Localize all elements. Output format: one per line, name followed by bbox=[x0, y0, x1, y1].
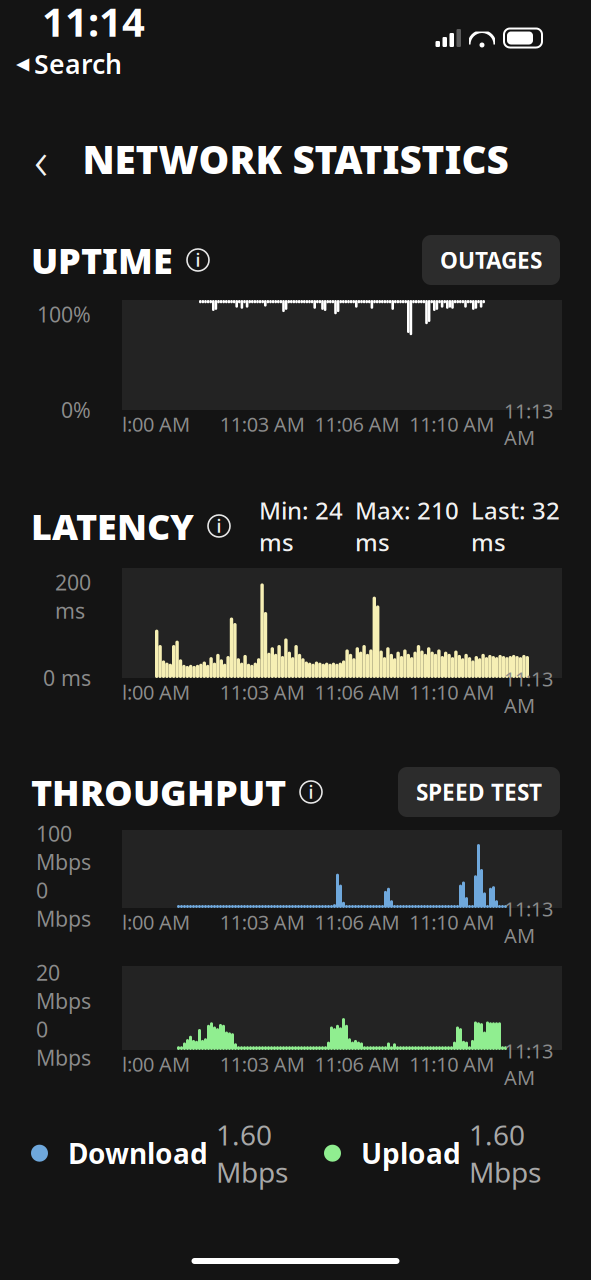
staticText: 11:03 AM bbox=[220, 909, 305, 935]
staticText: 11:10 AM bbox=[409, 679, 494, 705]
button[interactable]: Back bbox=[14, 132, 68, 186]
staticText: l:00 AM bbox=[122, 679, 190, 705]
staticText: NETWORK STATISTICS bbox=[82, 133, 508, 185]
staticText: SPEED TEST bbox=[416, 777, 542, 807]
staticText: 11:14 bbox=[42, 0, 145, 48]
button[interactable]: SPEED TEST bbox=[398, 767, 560, 817]
staticText: l:00 AM bbox=[122, 411, 190, 437]
staticText: 11:06 AM bbox=[314, 909, 399, 935]
button[interactable]: ◀ bbox=[0, 46, 122, 81]
staticText: l:00 AM bbox=[122, 1051, 190, 1077]
staticText: 0 Mbps bbox=[36, 876, 91, 933]
staticText: Min: 24 ms bbox=[259, 494, 343, 558]
staticText: 200 ms bbox=[55, 568, 91, 625]
button[interactable]: About UPTIME bbox=[187, 249, 209, 271]
staticText: 11:10 AM bbox=[409, 909, 494, 935]
staticText: Max: 210 ms bbox=[355, 494, 459, 558]
staticText: 11:13 AM bbox=[504, 895, 553, 948]
staticText: 1.60 Mbps bbox=[216, 1116, 288, 1190]
staticText: 0% bbox=[61, 396, 91, 424]
staticText: 11:13 AM bbox=[504, 665, 553, 718]
staticText: Download bbox=[68, 1135, 208, 1172]
staticText: 1.60 Mbps bbox=[469, 1116, 541, 1190]
staticText: Upload bbox=[361, 1135, 461, 1172]
staticText: 11:06 AM bbox=[314, 411, 399, 437]
staticText: THROUGHPUT bbox=[31, 768, 286, 816]
staticText: ‹ bbox=[34, 124, 48, 194]
staticText: 11:06 AM bbox=[314, 1051, 399, 1077]
button[interactable]: About Latency bbox=[208, 515, 230, 537]
staticText: 11:10 AM bbox=[409, 1051, 494, 1077]
staticText: 11:03 AM bbox=[220, 411, 305, 437]
staticText: 20 Mbps bbox=[36, 958, 91, 1015]
staticText: Search bbox=[34, 46, 122, 81]
staticText: l:00 AM bbox=[122, 909, 190, 935]
staticText: OUTAGES bbox=[440, 245, 542, 275]
button[interactable]: OUTAGES bbox=[422, 235, 560, 285]
staticText: 0 ms bbox=[43, 664, 91, 692]
staticText: ◀ bbox=[16, 54, 29, 73]
staticText: 11:06 AM bbox=[314, 679, 399, 705]
staticText: 11:03 AM bbox=[220, 1051, 305, 1077]
staticText: 0 Mbps bbox=[36, 1015, 91, 1072]
staticText: UPTIME bbox=[31, 236, 173, 284]
staticText: LATENCY bbox=[31, 502, 194, 550]
staticText: i bbox=[308, 780, 313, 803]
staticText: 100% bbox=[37, 300, 91, 328]
staticText: i bbox=[195, 248, 200, 271]
staticText: 100 Mbps bbox=[36, 819, 91, 876]
button[interactable]: About THROUGHPUT bbox=[300, 781, 322, 803]
staticText: 11:13 AM bbox=[504, 1037, 553, 1090]
staticText: Last: 32 ms bbox=[471, 494, 560, 558]
staticText: 11:10 AM bbox=[409, 411, 494, 437]
staticText: 11:13 AM bbox=[504, 397, 553, 450]
staticText: i bbox=[216, 514, 221, 537]
staticText: 11:03 AM bbox=[220, 679, 305, 705]
